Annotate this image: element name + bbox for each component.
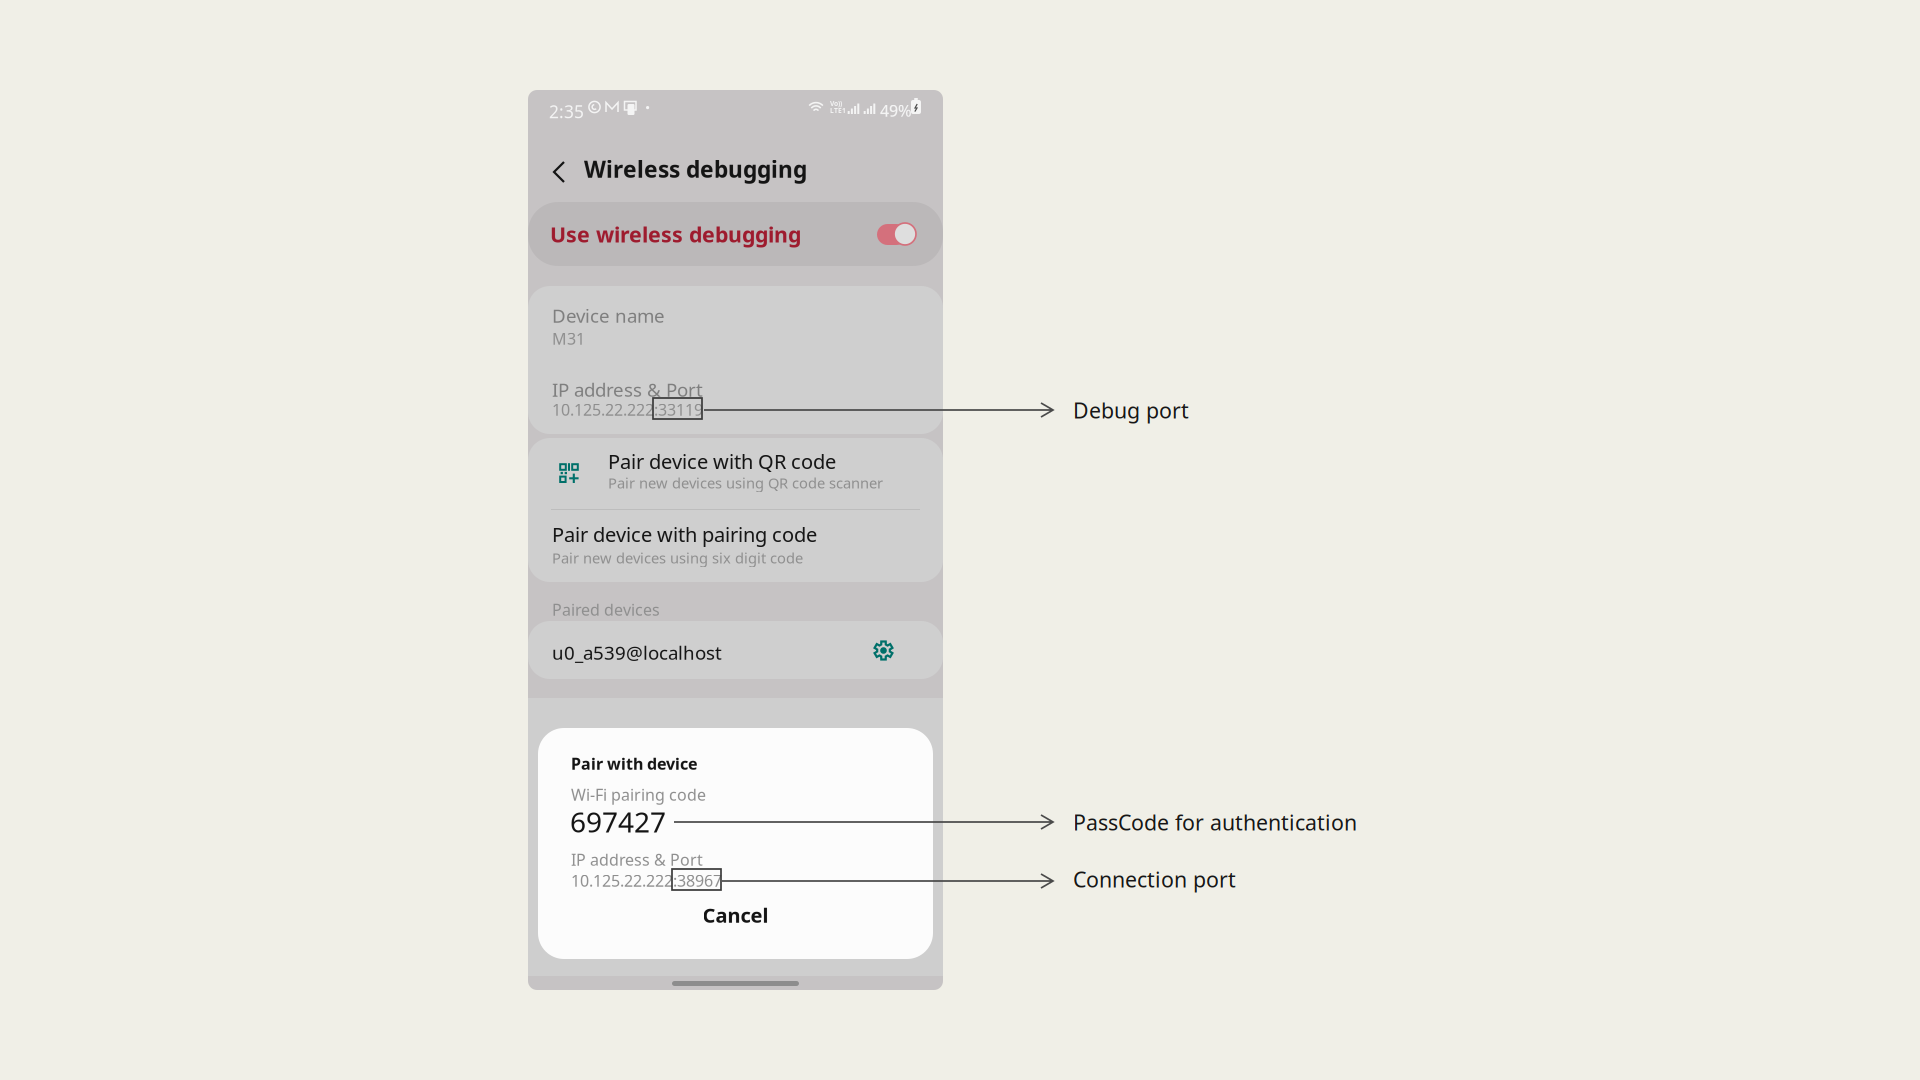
staticText: Wi-Fi pairing code	[571, 784, 706, 805]
staticText: u0_a539@localhost	[552, 640, 722, 665]
staticText: Pair device with pairing code	[552, 521, 817, 548]
staticText: Connection port	[1073, 865, 1236, 893]
button[interactable]: Cancel	[538, 892, 933, 938]
staticText: Device name	[552, 303, 665, 328]
staticText: 697427	[570, 803, 666, 840]
button[interactable]: u0_a539@localhost	[528, 621, 943, 679]
staticText: 2:35	[549, 100, 584, 123]
staticText: Cancel	[702, 902, 768, 928]
staticText: Use wireless debugging	[550, 220, 801, 248]
staticText: IP address & Port	[571, 849, 703, 870]
staticText: Debug port	[1073, 396, 1189, 424]
staticText: 49%	[880, 100, 912, 121]
button[interactable]: Back	[528, 146, 584, 194]
staticText: Pair with device	[571, 753, 698, 774]
button[interactable]: Wireless debugging	[582, 147, 809, 191]
staticText: Vo))	[830, 99, 842, 108]
staticText: 10.125.22.222:33119	[552, 399, 703, 420]
button[interactable]: Pair device with pairing code	[528, 510, 943, 582]
staticText: IP address & Port	[552, 377, 703, 402]
staticText: LTE1	[830, 106, 846, 115]
staticText: Pair new devices using six digit code	[552, 548, 803, 567]
staticText: Paired devices	[552, 599, 660, 620]
staticText: PassCode for authentication	[1073, 808, 1357, 836]
staticText: Wireless debugging	[584, 154, 807, 184]
staticText: 10.125.22.222:38967	[571, 870, 722, 891]
staticText: M31	[552, 328, 585, 349]
staticText: Pair new devices using QR code scanner	[608, 473, 883, 492]
staticText: Pair device with QR code	[608, 448, 836, 475]
button[interactable]: Pair device with QR code	[528, 438, 943, 509]
button[interactable]: Use wireless debugging	[528, 202, 943, 266]
